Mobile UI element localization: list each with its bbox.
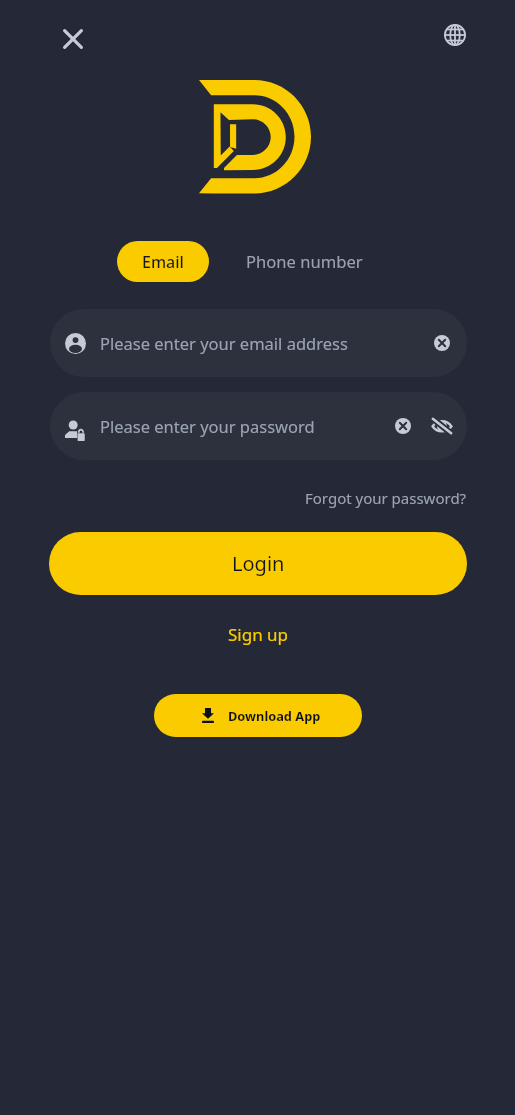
button[interactable]: Forgot your password?: [305, 488, 467, 508]
staticText: Forgot your password?: [305, 488, 467, 508]
button[interactable]: Clear: [395, 418, 411, 434]
button[interactable]: Download App: [154, 694, 362, 737]
button[interactable]: Login: [49, 532, 467, 595]
button[interactable]: Clear: [434, 335, 450, 351]
staticText: Login: [232, 550, 285, 577]
button[interactable]: Sign up: [228, 623, 289, 646]
staticText: Phone number: [246, 250, 363, 273]
staticText: Download App: [228, 707, 321, 724]
button[interactable]: Email: [117, 241, 209, 282]
staticText: Sign up: [228, 623, 289, 646]
button[interactable]: Please enter your email address: [50, 309, 467, 377]
staticText: Please enter your email address: [100, 332, 348, 354]
button[interactable]: Close: [50, 16, 95, 61]
staticText: Please enter your password: [100, 415, 315, 437]
button[interactable]: Phone number: [246, 241, 363, 282]
staticText: Email: [142, 251, 184, 273]
button[interactable]: Show password: [432, 418, 452, 434]
button[interactable]: Please enter your password: [50, 392, 467, 460]
button[interactable]: Language: [434, 14, 476, 56]
